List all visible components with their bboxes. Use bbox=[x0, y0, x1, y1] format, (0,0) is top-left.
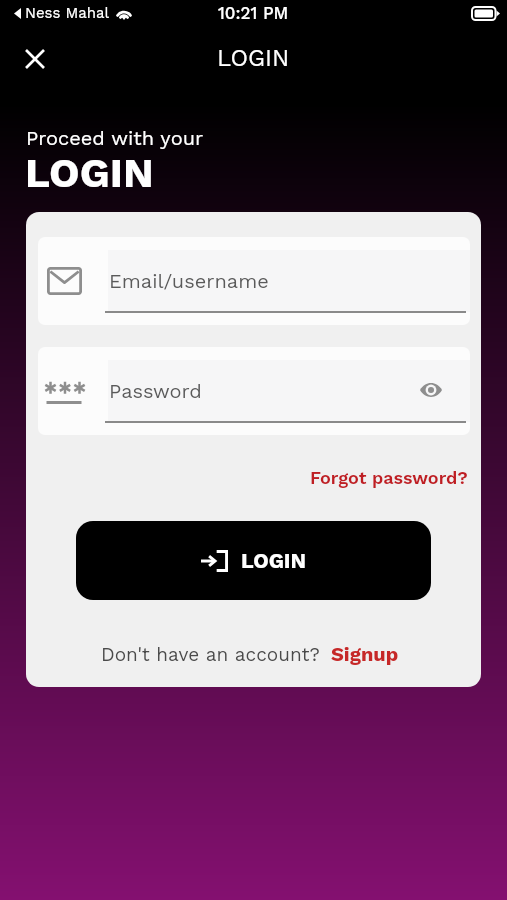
staticText: LOGIN bbox=[241, 548, 307, 573]
button[interactable]: Signup bbox=[331, 642, 399, 665]
staticText: LOGIN bbox=[217, 44, 290, 72]
staticText: Password bbox=[109, 379, 202, 402]
button[interactable]: Show password bbox=[414, 373, 448, 407]
button[interactable]: Forgot password? bbox=[310, 467, 468, 488]
staticText: LOGIN bbox=[25, 148, 154, 197]
staticText: 10:21 PM bbox=[218, 3, 289, 23]
button[interactable]: LOGIN bbox=[76, 521, 431, 600]
button[interactable]: Password bbox=[38, 347, 470, 435]
staticText: Email/username bbox=[109, 269, 269, 292]
button[interactable]: Close bbox=[13, 37, 56, 80]
button[interactable]: Email/username bbox=[38, 237, 470, 325]
staticText: Don't have an account? bbox=[101, 643, 320, 665]
staticText: Ness Mahal bbox=[25, 4, 110, 22]
staticText: Proceed with your bbox=[26, 126, 204, 149]
